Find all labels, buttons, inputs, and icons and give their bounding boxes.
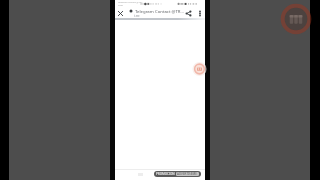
button[interactable]: Close xyxy=(116,9,125,18)
staticText: Telegram Contact @TR... xyxy=(135,8,184,14)
button[interactable]: More options xyxy=(195,9,204,18)
staticText: t.me xyxy=(118,4,123,7)
button[interactable]: Share xyxy=(184,9,193,18)
button[interactable]: PROMOCION xyxy=(154,171,201,177)
staticText: ADVERTISEMENT xyxy=(177,172,198,176)
staticText: Telegram Contact @TRF xyxy=(118,1,143,4)
staticText: PROMOCION xyxy=(156,172,175,176)
staticText: t.me xyxy=(134,14,140,18)
